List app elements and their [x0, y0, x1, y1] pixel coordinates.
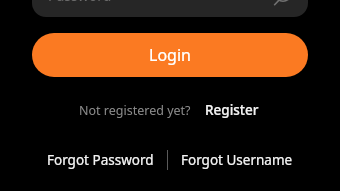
staticText: Login [149, 44, 191, 66]
staticText: Register [205, 101, 259, 119]
button[interactable]: Register [203, 99, 261, 121]
staticText: Password [48, 0, 112, 5]
staticText: Forgot Username [181, 151, 293, 169]
staticText: Forgot Password [47, 151, 154, 169]
button[interactable]: Forgot Username [177, 148, 297, 172]
button[interactable]: Show password [272, 0, 294, 7]
button[interactable]: Forgot Password [43, 148, 158, 172]
button[interactable]: Login [32, 33, 308, 77]
button[interactable]: Password [32, 0, 308, 17]
staticText: Not registered yet? [79, 102, 191, 119]
